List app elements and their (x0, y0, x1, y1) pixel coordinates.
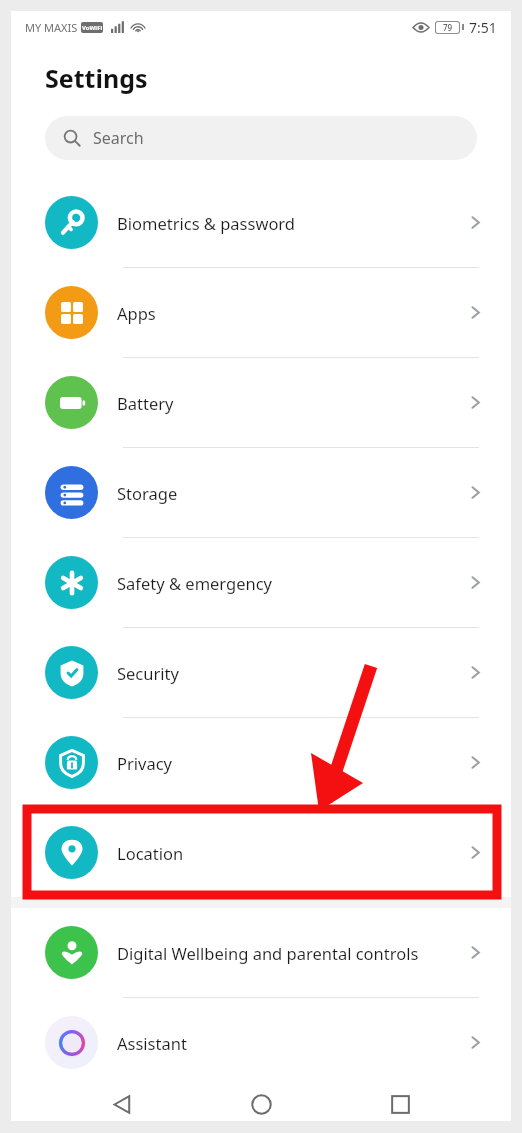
staticText: Security (117, 662, 460, 684)
button[interactable]: Apps (11, 268, 511, 358)
staticText: Digital Wellbeing and parental controls (117, 942, 460, 964)
button[interactable]: Digital Wellbeing and parental controls (11, 908, 511, 998)
button[interactable]: Biometrics & password (11, 178, 511, 268)
button[interactable]: Back (94, 1087, 150, 1121)
staticText: Privacy (117, 752, 460, 774)
staticText: Search (93, 127, 144, 149)
button[interactable]: Home (233, 1087, 289, 1121)
button[interactable]: Battery (11, 358, 511, 448)
staticText: Assistant (117, 1032, 460, 1054)
staticText: 79 (443, 22, 453, 33)
button[interactable]: Recent apps (372, 1087, 428, 1121)
button[interactable]: Security (11, 628, 511, 718)
button[interactable]: Assistant (11, 998, 511, 1087)
staticText: Settings (45, 61, 148, 95)
staticText: Apps (117, 302, 460, 324)
button[interactable]: Privacy (11, 718, 511, 808)
staticText: Location (117, 842, 460, 864)
staticText: 7:51 (469, 18, 497, 37)
staticText: Storage (117, 482, 460, 504)
staticText: VoWiFi (82, 24, 103, 32)
button[interactable]: Location (11, 808, 511, 897)
staticText: Biometrics & password (117, 212, 460, 234)
button[interactable]: Storage (11, 448, 511, 538)
button[interactable]: Safety & emergency (11, 538, 511, 628)
staticText: Battery (117, 392, 460, 414)
button[interactable]: Search (45, 116, 477, 160)
staticText: MY MAXIS (25, 20, 78, 35)
staticText: Safety & emergency (117, 572, 460, 594)
